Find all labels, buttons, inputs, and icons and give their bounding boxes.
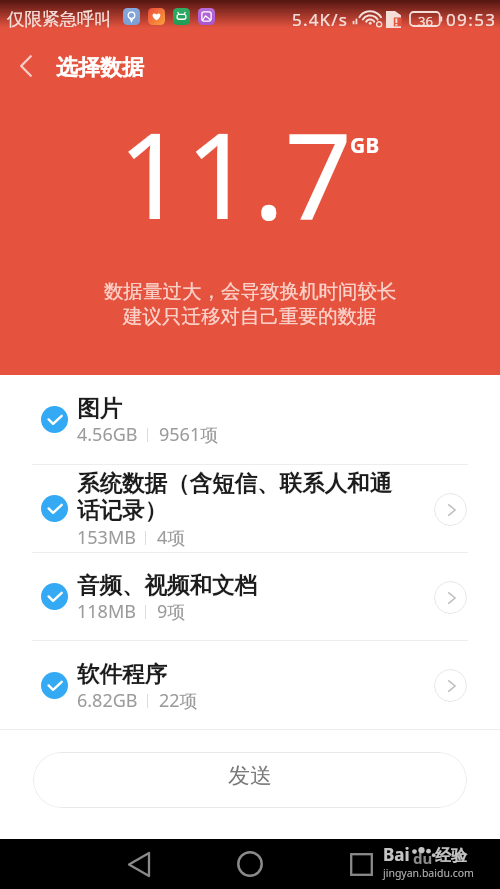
button[interactable]: Back [2, 42, 50, 90]
staticText: 图片 [77, 394, 122, 422]
staticText: 软件程序 [77, 660, 167, 688]
button[interactable]: View details [422, 569, 478, 625]
staticText: 5.4K/s [292, 8, 349, 31]
button[interactable]: 音频、视频和文档 [0, 553, 500, 640]
staticText: 36 [418, 12, 433, 26]
staticText: du [413, 848, 433, 866]
staticText: 153MB [77, 525, 136, 550]
staticText: jingyan.baidu.com [383, 866, 474, 880]
staticText: Bai [383, 843, 410, 866]
staticText: 4.56GB [77, 422, 138, 447]
staticText: 建议只迁移对自己重要的数据 [123, 304, 377, 329]
button[interactable]: View details [422, 481, 478, 537]
staticText: 发送 [228, 762, 272, 790]
button[interactable]: 系统数据（含短信、联系人和通 话记录） [0, 465, 500, 552]
staticText: 09:53 [446, 8, 497, 31]
staticText: 11.7 [118, 93, 353, 254]
button[interactable]: 图片 [0, 375, 500, 464]
button[interactable]: View details [422, 657, 478, 713]
staticText: 经验 [435, 846, 467, 866]
button[interactable]: Recent apps [321, 839, 401, 889]
staticText: 选择数据 [56, 54, 144, 82]
staticText: GB [350, 131, 380, 160]
button[interactable]: 发送 [33, 752, 467, 808]
staticText: 9561项 [159, 422, 219, 447]
staticText: 数据量过大，会导致换机时间较长 [104, 279, 397, 304]
button[interactable]: 软件程序 [0, 641, 500, 729]
staticText: 9项 [157, 599, 186, 624]
staticText: 118MB [77, 599, 136, 624]
staticText: 22项 [159, 688, 198, 713]
staticText: 6.82GB [77, 688, 138, 713]
staticText: 音频、视频和文档 [77, 571, 257, 599]
button[interactable]: Home [205, 839, 295, 889]
staticText: 4项 [157, 525, 186, 550]
staticText: 系统数据（含短信、联系人和通 话记录） [77, 469, 392, 525]
staticText: 仅限紧急呼叫 [7, 8, 112, 30]
button[interactable]: Back [41, 839, 236, 889]
